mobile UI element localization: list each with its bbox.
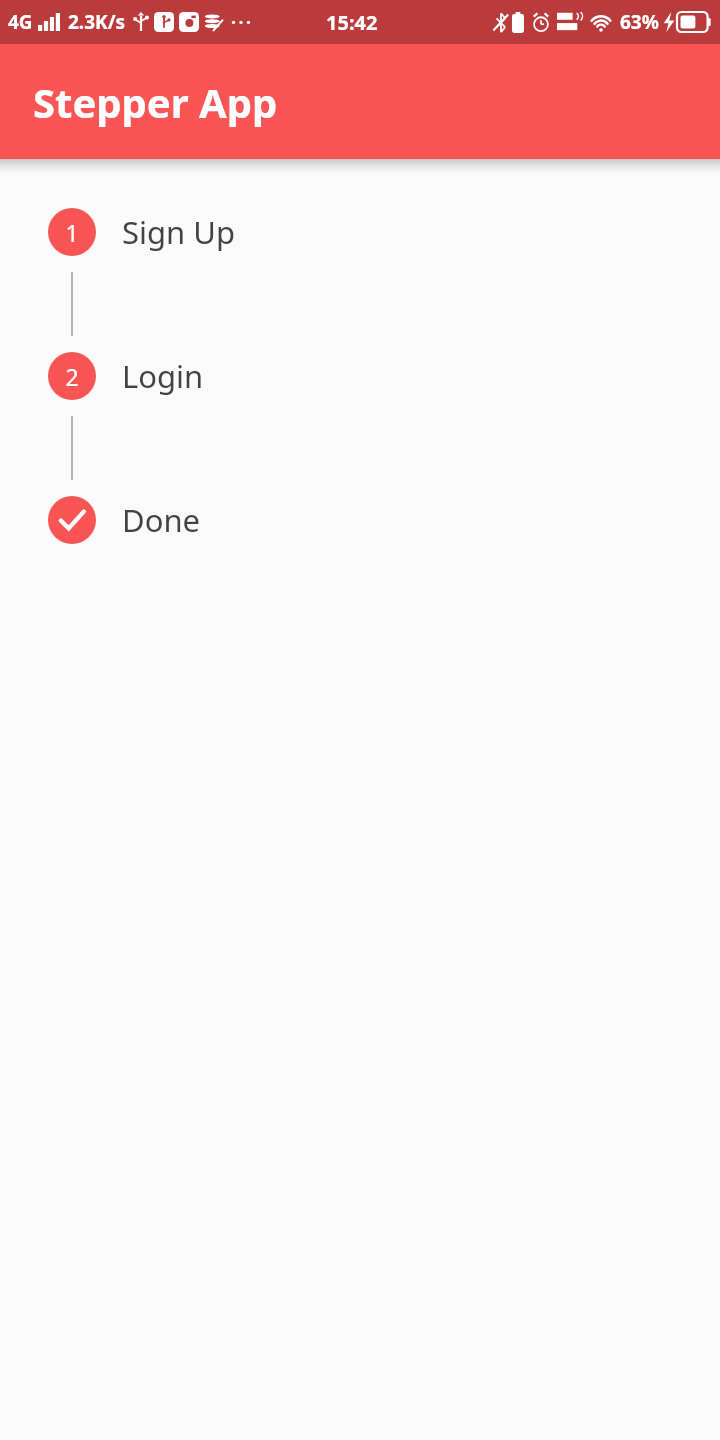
staticText: Login bbox=[122, 355, 204, 397]
staticText: 4G bbox=[8, 9, 33, 35]
button[interactable]: 1 bbox=[0, 208, 720, 256]
other: Completed bbox=[58, 506, 86, 534]
staticText: Done bbox=[122, 499, 201, 541]
button[interactable]: Completed bbox=[0, 496, 720, 544]
staticText: 63% bbox=[620, 9, 659, 35]
staticText: 2.3K/s bbox=[68, 9, 126, 35]
button[interactable]: 2 bbox=[0, 352, 720, 400]
staticText: 2 bbox=[65, 361, 79, 392]
staticText: Sign Up bbox=[122, 211, 236, 253]
staticText: Stepper App bbox=[33, 75, 278, 129]
staticText: 1 bbox=[65, 217, 79, 248]
staticText: 15:42 bbox=[326, 9, 378, 36]
